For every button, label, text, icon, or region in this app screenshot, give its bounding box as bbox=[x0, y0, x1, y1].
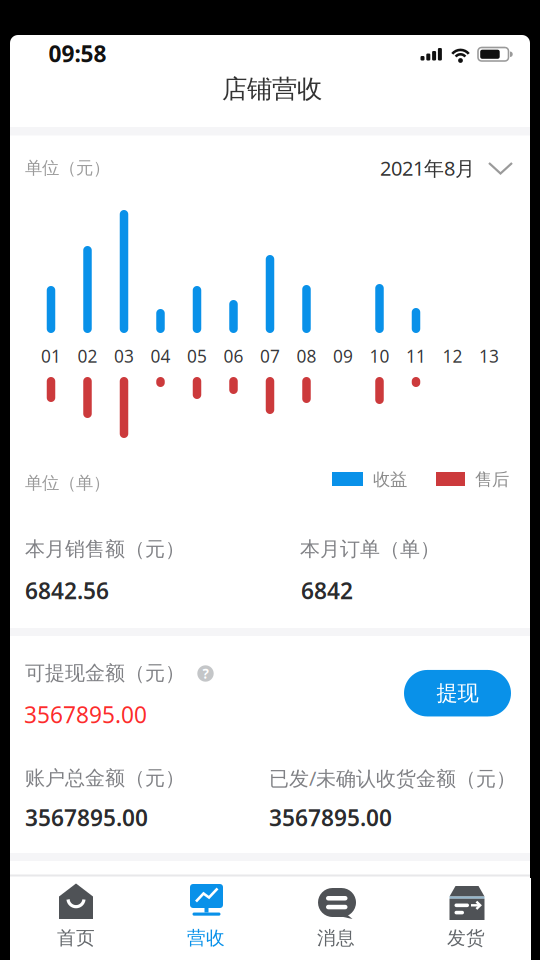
staticText: 06 bbox=[223, 344, 243, 367]
staticText: 08 bbox=[296, 344, 316, 367]
staticText: 本月销售额（元） bbox=[25, 537, 185, 561]
staticText: 售后 bbox=[475, 469, 509, 490]
staticText: 店铺营收 bbox=[222, 73, 322, 104]
staticText: 单位（单） bbox=[25, 472, 110, 494]
staticText: 2021年8月 bbox=[380, 155, 475, 181]
staticText: 12 bbox=[442, 344, 462, 367]
staticText: 6842 bbox=[301, 575, 353, 605]
button[interactable]: 提现 bbox=[404, 670, 511, 716]
staticText: 01 bbox=[41, 344, 61, 367]
staticText: 3567895.00 bbox=[269, 802, 392, 832]
staticText: 09 bbox=[333, 344, 353, 367]
staticText: 本月订单（单） bbox=[300, 537, 440, 561]
staticText: 10 bbox=[369, 344, 389, 367]
staticText: 可提现金额（元） bbox=[25, 661, 185, 685]
button[interactable]: 2021年8月 bbox=[376, 151, 516, 185]
staticText: 营收 bbox=[187, 926, 225, 949]
staticText: 账户总金额（元） bbox=[25, 766, 185, 790]
staticText: 3567895.00 bbox=[25, 802, 148, 832]
staticText: 提现 bbox=[436, 680, 478, 706]
staticText: 6842.56 bbox=[25, 575, 109, 605]
staticText: 收益 bbox=[373, 469, 407, 490]
staticText: 消息 bbox=[317, 926, 355, 949]
staticText: 发货 bbox=[447, 926, 485, 949]
staticText: 单位（元） bbox=[25, 157, 110, 179]
staticText: 05 bbox=[187, 344, 207, 367]
button[interactable]: 消息 bbox=[271, 878, 401, 960]
staticText: 3567895.00 bbox=[24, 699, 147, 729]
button[interactable]: 首页 bbox=[11, 878, 141, 960]
staticText: 首页 bbox=[57, 926, 95, 949]
staticText: 07 bbox=[260, 344, 280, 367]
button[interactable]: 说明 bbox=[195, 663, 215, 683]
staticText: 02 bbox=[77, 344, 97, 367]
staticText: 13 bbox=[479, 344, 499, 367]
staticText: 09:58 bbox=[48, 38, 106, 68]
staticText: 04 bbox=[150, 344, 170, 367]
staticText: ? bbox=[202, 665, 208, 682]
staticText: 03 bbox=[114, 344, 134, 367]
staticText: 已发/未确认收货金额（元） bbox=[269, 765, 516, 791]
staticText: 11 bbox=[406, 344, 426, 367]
button[interactable]: 营收 bbox=[141, 878, 271, 960]
button[interactable]: 发货 bbox=[401, 878, 531, 960]
